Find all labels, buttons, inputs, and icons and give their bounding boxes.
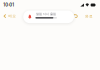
staticText: 알림 다시 울림 [36,12,56,16]
button[interactable]: 알림 다시 울림 [23,10,74,23]
staticText: 메모 [8,14,16,18]
staticText: 완료 [85,14,93,18]
staticText: 10:01 [3,2,14,8]
button[interactable]: 메모 [2,12,17,20]
button[interactable]: 완료 [73,12,94,20]
